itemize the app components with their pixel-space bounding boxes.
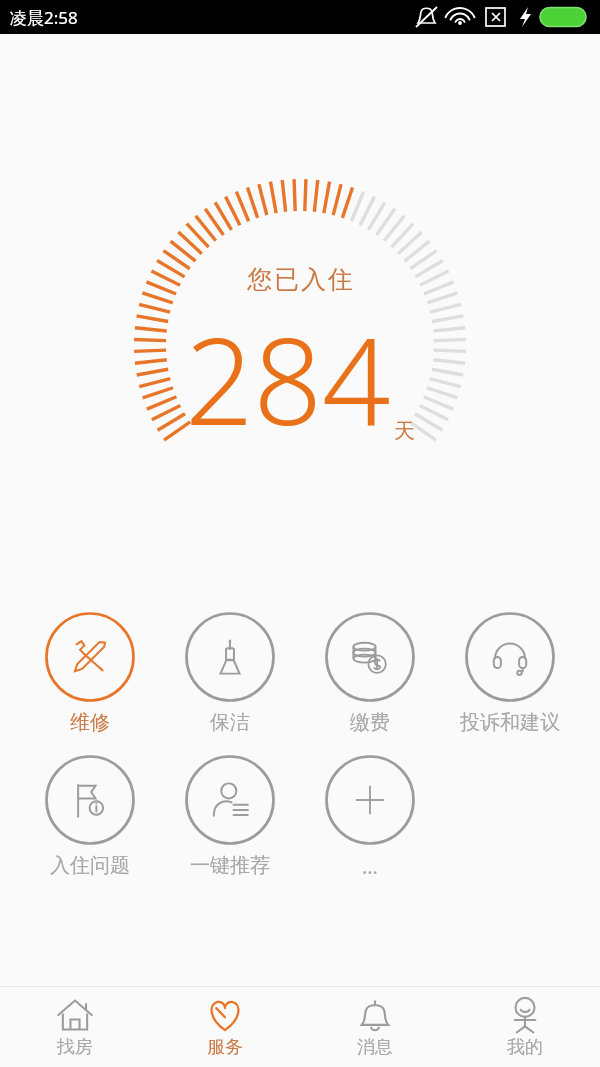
button[interactable]: 我的: [450, 987, 600, 1067]
staticText: 您已入住: [246, 264, 354, 295]
button[interactable]: …: [300, 755, 440, 880]
button[interactable]: 消息: [300, 987, 450, 1067]
staticText: 一键推荐: [190, 853, 270, 878]
button[interactable]: 保洁: [160, 612, 300, 735]
staticText: …: [362, 853, 378, 880]
button[interactable]: 服务: [150, 987, 300, 1067]
button[interactable]: 入住问题: [20, 755, 160, 878]
staticText: 保洁: [210, 710, 250, 735]
staticText: 我的: [507, 1036, 543, 1059]
button[interactable]: 缴费: [300, 612, 440, 735]
staticText: 维修: [70, 710, 110, 735]
button[interactable]: 一键推荐: [160, 755, 300, 878]
button[interactable]: 投诉和建议: [440, 612, 580, 735]
staticText: 天: [394, 418, 415, 444]
staticText: 消息: [357, 1036, 393, 1059]
staticText: 284: [185, 297, 391, 460]
button[interactable]: 维修: [20, 612, 160, 735]
staticText: 凌晨2:58: [10, 6, 78, 29]
staticText: 缴费: [350, 710, 390, 735]
staticText: 找房: [57, 1036, 93, 1059]
button[interactable]: 找房: [0, 987, 150, 1067]
staticText: 投诉和建议: [460, 710, 560, 735]
staticText: 入住问题: [50, 853, 130, 878]
staticText: 服务: [207, 1036, 243, 1059]
